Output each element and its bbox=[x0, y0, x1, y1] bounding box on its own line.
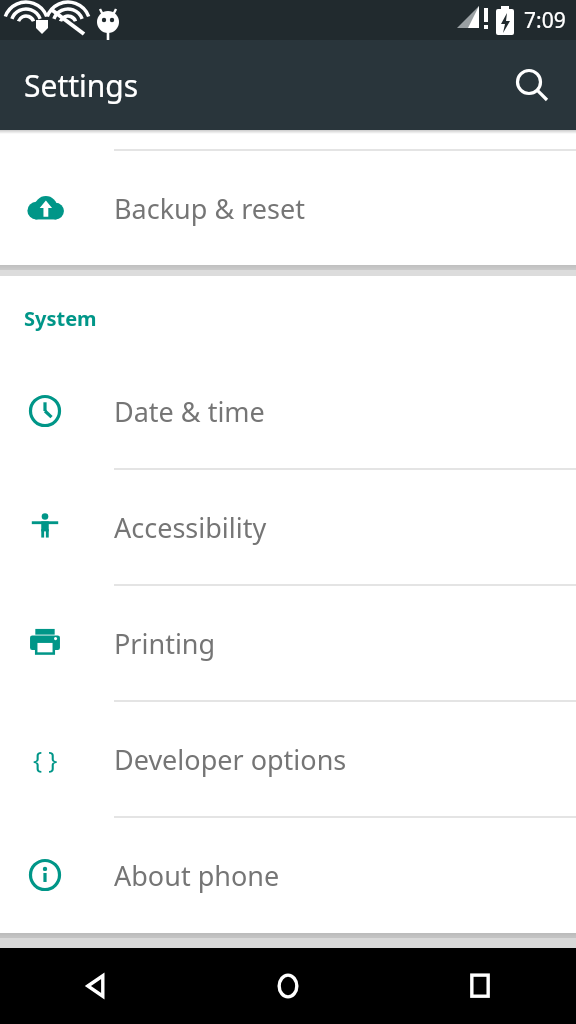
staticText: Printing bbox=[114, 625, 216, 662]
button[interactable]: Search bbox=[504, 57, 560, 113]
button[interactable]: Home bbox=[192, 948, 384, 1024]
button[interactable]: Back bbox=[0, 948, 192, 1024]
staticText: { } bbox=[33, 743, 58, 776]
staticText: Backup & reset bbox=[114, 190, 305, 227]
staticText: 7:09 bbox=[524, 6, 566, 35]
staticText: Date & time bbox=[114, 393, 265, 430]
button[interactable]: Backup & reset bbox=[0, 151, 576, 265]
staticText: Settings bbox=[24, 65, 139, 106]
button[interactable]: About phone bbox=[0, 818, 576, 932]
staticText: About phone bbox=[114, 857, 280, 894]
button[interactable]: Printing bbox=[0, 586, 576, 700]
staticText: Accessibility bbox=[114, 509, 267, 546]
staticText: Developer options bbox=[114, 741, 347, 778]
button[interactable]: { } bbox=[0, 702, 576, 816]
button[interactable]: Accessibility bbox=[0, 470, 576, 584]
button[interactable]: Recents bbox=[384, 948, 576, 1024]
staticText: System bbox=[24, 305, 97, 332]
button[interactable]: Date & time bbox=[0, 354, 576, 468]
